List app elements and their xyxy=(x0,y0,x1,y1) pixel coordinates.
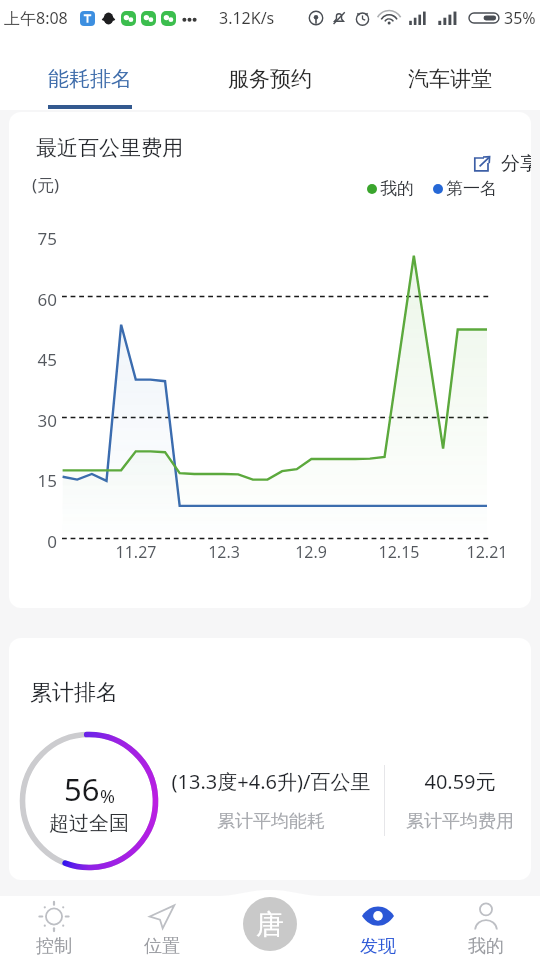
button[interactable]: 位置 xyxy=(108,896,216,960)
button[interactable]: 分享 xyxy=(472,148,531,179)
button[interactable]: 能耗排名 xyxy=(0,36,180,110)
staticText: 15 xyxy=(18,469,57,492)
staticText: 累计排名 xyxy=(30,679,118,707)
staticText: 12.9 xyxy=(276,541,346,563)
staticText: 3.12K/s xyxy=(219,7,275,29)
staticText: 60 xyxy=(18,288,57,311)
button[interactable]: 发现 xyxy=(324,896,432,960)
staticText: 最近百公里费用 xyxy=(36,135,183,161)
staticText: 12.15 xyxy=(364,541,434,563)
staticText: (13.3度+4.6升)/百公里 xyxy=(141,768,401,795)
staticText: 位置 xyxy=(144,935,180,958)
staticText: 56 xyxy=(64,768,100,810)
staticText: 服务预约 xyxy=(228,66,312,92)
staticText: 发现 xyxy=(360,935,396,958)
staticText: 第一名 xyxy=(446,178,497,199)
staticText: 累计平均费用 xyxy=(380,810,531,833)
staticText: 12.21 xyxy=(452,541,522,563)
staticText: 能耗排名 xyxy=(48,66,132,92)
staticText: 75 xyxy=(18,227,57,250)
staticText: 40.59元 xyxy=(380,768,531,795)
staticText: 12.3 xyxy=(189,541,259,563)
staticText: % xyxy=(100,784,115,809)
staticText: 35% xyxy=(504,7,536,29)
staticText: 我的 xyxy=(380,178,414,199)
button[interactable]: 服务预约 xyxy=(180,36,360,110)
button[interactable]: 控制 xyxy=(0,896,108,960)
button[interactable]: 唐 home xyxy=(243,897,297,951)
staticText: 累计平均能耗 xyxy=(141,810,401,833)
button[interactable]: 汽车讲堂 xyxy=(360,36,540,110)
staticText: 唐 xyxy=(256,907,284,942)
staticText: (元) xyxy=(32,173,60,196)
staticText: 11.27 xyxy=(101,541,171,563)
staticText: 超过全国 xyxy=(49,811,129,836)
staticText: 30 xyxy=(18,409,57,432)
staticText: 上午8:08 xyxy=(4,7,68,29)
staticText: 我的 xyxy=(468,935,504,958)
staticText: 45 xyxy=(18,348,57,371)
staticText: 控制 xyxy=(36,935,72,958)
staticText: 0 xyxy=(18,530,57,553)
staticText: 汽车讲堂 xyxy=(408,66,492,92)
staticText: 分享 xyxy=(501,152,531,176)
button[interactable]: 我的 xyxy=(432,896,540,960)
